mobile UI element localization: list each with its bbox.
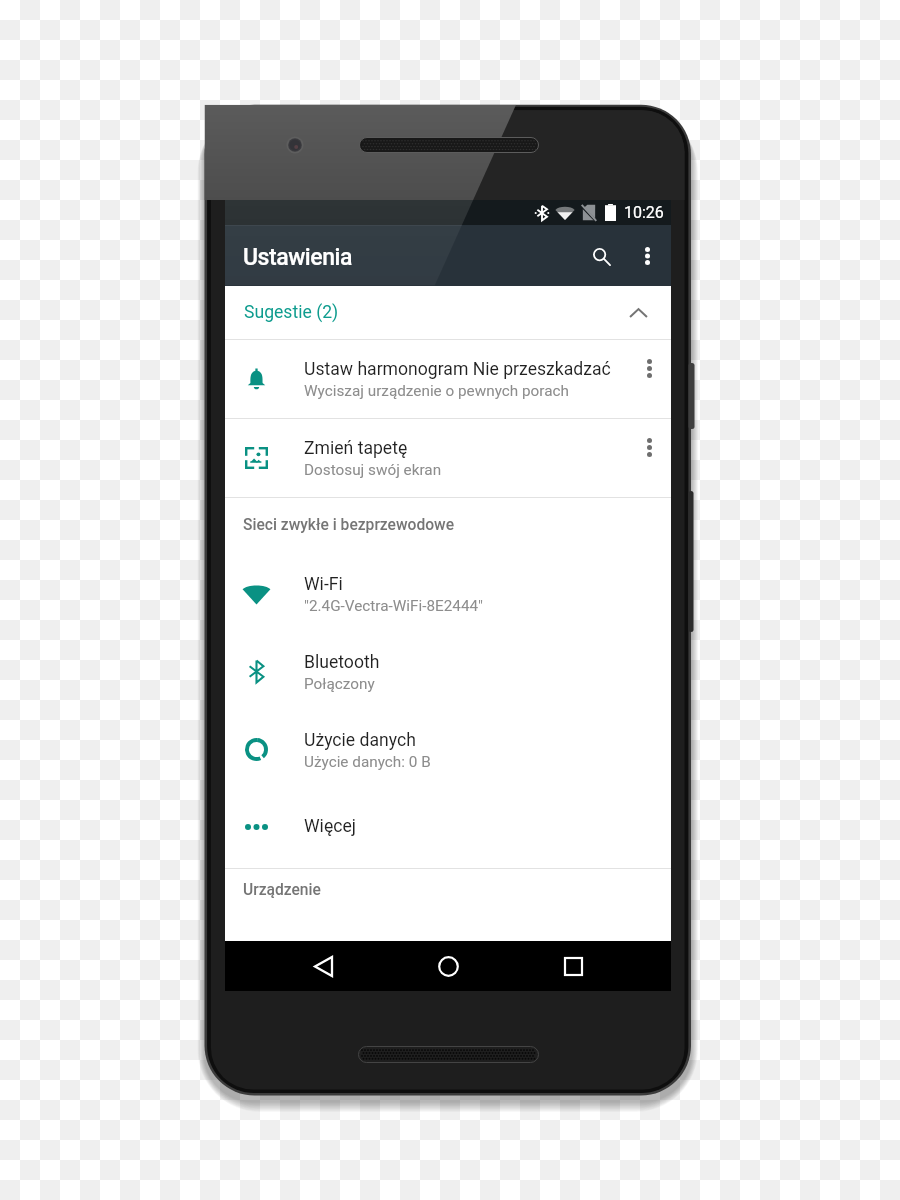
staticText: Użycie danych: 0 B <box>304 753 431 771</box>
button[interactable]: More options <box>629 348 669 388</box>
staticText: Ustawienia <box>243 244 352 271</box>
staticText: Dostosuj swój ekran <box>304 461 442 479</box>
button[interactable]: More options <box>629 427 669 467</box>
button[interactable]: Zmień tapetę <box>225 419 671 497</box>
button[interactable]: Wi-Fi <box>225 551 671 629</box>
staticText: Wi-Fi <box>304 574 343 595</box>
staticText: Więcej <box>304 816 356 837</box>
staticText: Wyciszaj urządzenie o pewnych porach <box>304 382 569 400</box>
staticText: Urządzenie <box>243 881 321 899</box>
button[interactable]: Home <box>424 942 472 990</box>
button[interactable]: Ustaw harmonogram Nie przeszkadzać <box>225 340 671 418</box>
staticText: Zmień tapetę <box>304 438 408 459</box>
button[interactable]: More options <box>625 234 669 278</box>
staticText: Sugestie (2) <box>244 302 339 323</box>
button[interactable]: Search <box>577 232 625 280</box>
button[interactable]: Sugestie (2) <box>225 286 671 339</box>
staticText: "2.4G-Vectra-WiFi-8E2444" <box>304 597 484 615</box>
button[interactable]: Bluetooth <box>225 629 671 707</box>
staticText: Użycie danych <box>304 730 416 751</box>
button[interactable]: Użycie danych <box>225 707 671 785</box>
button[interactable]: Więcej <box>225 785 671 868</box>
staticText: Bluetooth <box>304 652 380 673</box>
staticText: Połączony <box>304 675 375 693</box>
staticText: Ustaw harmonogram Nie przeszkadzać <box>304 359 611 380</box>
staticText: 10:26 <box>624 203 664 222</box>
button[interactable]: Recents <box>549 942 597 990</box>
button[interactable]: Back <box>299 942 347 990</box>
staticText: Sieci zwykłe i bezprzewodowe <box>243 516 455 534</box>
